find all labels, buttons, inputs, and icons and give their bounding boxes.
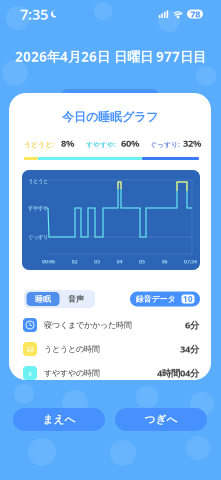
button[interactable]: z bbox=[23, 361, 199, 385]
staticText: まえへ bbox=[42, 413, 75, 426]
staticText: すやすや bbox=[28, 205, 48, 212]
staticText: 4時間04分 bbox=[157, 367, 199, 379]
staticText: 6分 bbox=[185, 319, 199, 331]
staticText: すやすやの時間 bbox=[44, 368, 100, 378]
button[interactable]: まえへ bbox=[13, 408, 105, 431]
staticText: すやすや: bbox=[86, 140, 116, 149]
staticText: ぐっすり: bbox=[150, 140, 180, 149]
staticText: 07:34 bbox=[184, 258, 197, 265]
staticText: 7:35 bbox=[20, 4, 48, 24]
staticText: 78 bbox=[190, 8, 200, 20]
staticText: 05 bbox=[139, 258, 145, 265]
staticText: 60% bbox=[121, 137, 139, 149]
button[interactable]: つぎへ bbox=[115, 408, 207, 431]
button[interactable]: 寝つくまでかかった時間 bbox=[23, 313, 199, 337]
staticText: 32% bbox=[183, 137, 201, 149]
staticText: 音声 bbox=[68, 294, 84, 304]
button[interactable]: 睡眠 bbox=[26, 292, 59, 306]
staticText: つぎへ bbox=[144, 413, 177, 426]
button[interactable]: 音声 bbox=[59, 292, 92, 306]
staticText: 10 bbox=[183, 294, 193, 304]
staticText: ぐっすり bbox=[28, 234, 48, 241]
staticText: 04 bbox=[116, 258, 122, 265]
staticText: うとうとの時間 bbox=[44, 344, 100, 354]
staticText: 34分 bbox=[180, 343, 199, 355]
staticText: z bbox=[28, 369, 31, 377]
staticText: 03 bbox=[94, 258, 100, 265]
staticText: Zz bbox=[26, 345, 33, 353]
staticText: 2026年4月26日 日曜日 977日目 bbox=[15, 48, 206, 65]
staticText: 8% bbox=[61, 137, 74, 149]
staticText: 録音データ bbox=[135, 294, 175, 304]
staticText: 06 bbox=[161, 258, 167, 265]
staticText: 寝つくまでかかった時間 bbox=[44, 320, 132, 330]
staticText: 00:46 bbox=[42, 258, 55, 265]
button[interactable]: 録音データ bbox=[130, 291, 200, 306]
staticText: 睡眠 bbox=[35, 294, 51, 304]
staticText: うとうと bbox=[28, 178, 48, 185]
staticText: 02 bbox=[71, 258, 77, 265]
staticText: うとうと: bbox=[24, 140, 54, 149]
button[interactable]: Zz bbox=[23, 337, 199, 361]
staticText: 今日の睡眠グラフ bbox=[62, 110, 158, 124]
